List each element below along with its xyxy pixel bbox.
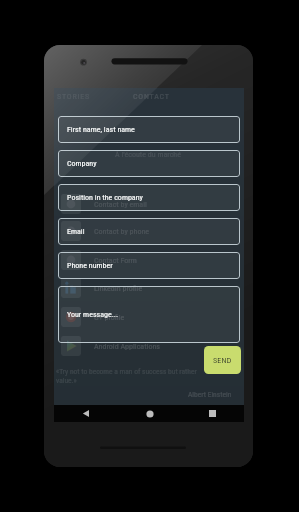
staticText: Your message... <box>67 310 119 319</box>
staticText: SEND <box>213 356 232 365</box>
button[interactable]: Phone number <box>58 252 240 279</box>
staticText: Company <box>67 159 97 168</box>
button[interactable]: Home <box>118 405 181 422</box>
staticText: G+ profile <box>94 313 125 322</box>
staticText: «Try not to become a man of success but … <box>56 367 197 376</box>
button[interactable]: Email <box>58 218 240 245</box>
button[interactable]: First name, last name <box>58 116 240 143</box>
staticText: Contact Form <box>94 256 137 265</box>
button[interactable]: SEND <box>204 346 241 374</box>
button[interactable]: Recent apps <box>181 405 244 422</box>
staticText: STORIES <box>57 92 90 101</box>
button[interactable]: Company <box>58 150 240 177</box>
staticText: À l'écoute du marché <box>115 150 181 159</box>
staticText: First name, last name <box>67 125 135 134</box>
button[interactable]: Position in the company <box>58 184 240 211</box>
staticText: Contact by phone <box>94 227 150 236</box>
button[interactable]: Back <box>54 405 118 422</box>
staticText: LinkedIn profile <box>94 284 143 293</box>
staticText: Phone number <box>67 261 113 270</box>
staticText: Email <box>67 227 85 236</box>
staticText: CONTACT <box>133 92 170 101</box>
staticText: Albert Einstein <box>188 390 232 399</box>
staticText: Position in the company <box>67 193 143 202</box>
button[interactable]: Your message... <box>58 286 240 343</box>
staticText: Android Applications <box>94 342 160 351</box>
staticText: Contact by email <box>94 200 147 209</box>
staticText: value.» <box>56 376 77 385</box>
